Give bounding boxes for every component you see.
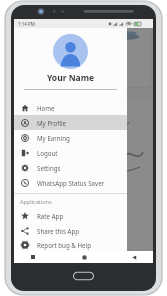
button[interactable]: Rate App [14,208,127,223]
staticText: My Profile [37,119,67,127]
button[interactable]: WhatsApp Status Saver [14,175,127,190]
button[interactable]: Home [14,100,127,115]
button[interactable]: Settings [14,160,127,175]
staticText: 1:14 PM [18,21,35,27]
button[interactable]: Share this App [14,223,127,238]
staticText: Home [37,104,55,112]
staticText: Applications [20,198,52,205]
button[interactable]: Logout [14,145,127,160]
staticText: My Earning [37,134,70,142]
staticText: Settings [37,164,61,172]
button[interactable]: My Profile [14,115,127,130]
button[interactable]: Recent apps [28,252,38,262]
staticText: Your Name [14,72,127,84]
button[interactable]: Home [79,252,89,262]
staticText: Share this App [37,227,80,235]
staticText: WhatsApp Status Saver [37,179,105,187]
staticText: Logout [37,149,58,157]
button[interactable]: Back [129,252,139,262]
button[interactable]: Report bug & Help [14,238,127,251]
staticText: Rate App [37,212,64,220]
staticText: Report bug & Help [37,241,91,249]
button[interactable]: My Earning [14,130,127,145]
